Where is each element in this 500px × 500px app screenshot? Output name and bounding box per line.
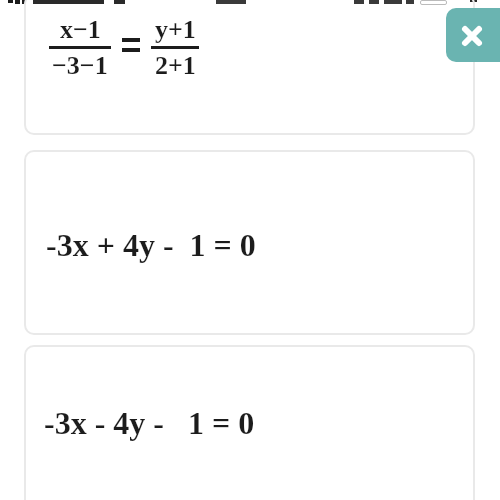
button[interactable] (446, 8, 500, 62)
staticText: y+1 (155, 15, 196, 44)
staticText: 2+1 (155, 51, 196, 80)
button[interactable]: x−1 (24, 0, 475, 135)
staticText: -3x - 4y - 1 = 0 (44, 405, 255, 440)
staticText: x−1 (60, 15, 101, 44)
button[interactable]: -3x - 4y - 1 = 0 (24, 345, 475, 500)
staticText: -3x + 4y - 1 = 0 (46, 227, 256, 262)
staticText: −3−1 (52, 51, 108, 80)
button[interactable]: -3x + 4y - 1 = 0 (24, 150, 475, 335)
